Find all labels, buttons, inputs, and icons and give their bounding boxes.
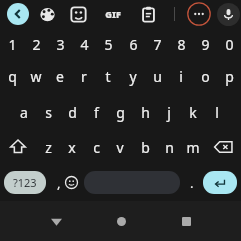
staticText: k [189, 103, 197, 122]
button[interactable]: 2 [24, 30, 48, 58]
button[interactable]: g [108, 98, 132, 126]
staticText: 6 [129, 35, 138, 54]
staticText: b [141, 138, 150, 157]
staticText: m [186, 138, 200, 157]
button[interactable]: 7 [145, 30, 169, 58]
button[interactable]: b [133, 133, 157, 161]
staticText: w [30, 67, 42, 86]
staticText: GIF [105, 8, 121, 20]
button[interactable]: t [96, 62, 120, 90]
button[interactable]: 8 [169, 30, 193, 58]
button[interactable]: x [60, 133, 84, 161]
button[interactable]: ?123 [4, 171, 46, 194]
button[interactable]: v [108, 133, 132, 161]
staticText: 4 [80, 35, 89, 54]
button[interactable]: Backspace [209, 133, 237, 161]
staticText: z [45, 138, 52, 157]
button[interactable]: z [36, 133, 60, 161]
staticText: 9 [201, 35, 210, 54]
staticText: 7 [153, 35, 162, 54]
staticText: t [105, 67, 111, 86]
button[interactable]: . [182, 171, 202, 194]
staticText: x [68, 138, 76, 157]
button[interactable]: More options [187, 2, 211, 26]
staticText: e [56, 67, 64, 86]
staticText: p [225, 67, 234, 86]
button[interactable]: 0 [217, 30, 241, 58]
staticText: q [8, 67, 17, 86]
staticText: 5 [104, 35, 113, 54]
button[interactable]: , [48, 171, 70, 194]
staticText: r [81, 67, 87, 86]
button[interactable]: GIF [103, 4, 123, 24]
button[interactable]: Stickers [70, 6, 87, 23]
button[interactable]: Back [48, 213, 64, 229]
staticText: ?123 [13, 175, 37, 190]
button[interactable]: y [121, 62, 145, 90]
staticText: g [116, 103, 125, 122]
button[interactable]: q [0, 62, 24, 90]
staticText: c [93, 138, 100, 157]
button[interactable]: a [12, 98, 36, 126]
staticText: d [68, 103, 77, 122]
staticText: . [190, 174, 194, 192]
button[interactable]: 5 [96, 30, 120, 58]
button[interactable]: 1 [0, 30, 24, 58]
staticText: 1 [8, 35, 17, 54]
button[interactable]: r [72, 62, 96, 90]
staticText: u [153, 67, 162, 86]
button[interactable]: 6 [121, 30, 145, 58]
button[interactable]: Back [7, 3, 29, 25]
staticText: o [201, 67, 210, 86]
staticText: i [179, 67, 183, 86]
staticText: 3 [56, 35, 65, 54]
button[interactable]: Home [113, 213, 129, 229]
button[interactable]: 9 [193, 30, 217, 58]
staticText: , [57, 174, 61, 192]
button[interactable]: Shift [4, 133, 32, 161]
button[interactable]: o [193, 62, 217, 90]
button[interactable]: c [84, 133, 108, 161]
button[interactable]: Clipboard [140, 6, 157, 23]
staticText: h [141, 103, 150, 122]
button[interactable]: e [48, 62, 72, 90]
button[interactable]: w [24, 62, 48, 90]
button[interactable]: s [36, 98, 60, 126]
button[interactable]: k [181, 98, 205, 126]
button[interactable]: d [60, 98, 84, 126]
button[interactable]: f [84, 98, 108, 126]
button[interactable]: n [157, 133, 181, 161]
staticText: s [45, 103, 52, 122]
staticText: 2 [32, 35, 41, 54]
button[interactable]: Space [84, 171, 180, 194]
staticText: 8 [177, 35, 186, 54]
button[interactable]: p [217, 62, 241, 90]
staticText: n [165, 138, 174, 157]
button[interactable]: l [205, 98, 229, 126]
button[interactable]: u [145, 62, 169, 90]
button[interactable]: Enter [203, 171, 237, 194]
button[interactable]: m [181, 133, 205, 161]
button[interactable]: Recents [178, 213, 194, 229]
button[interactable]: Themes [39, 6, 56, 23]
staticText: y [129, 67, 137, 86]
staticText: a [20, 103, 28, 122]
button[interactable]: 4 [72, 30, 96, 58]
button[interactable]: 3 [48, 30, 72, 58]
staticText: j [167, 103, 171, 122]
staticText: 0 [225, 35, 234, 54]
button[interactable]: j [157, 98, 181, 126]
button[interactable]: Emoji [60, 171, 82, 194]
button[interactable]: i [169, 62, 193, 90]
button[interactable]: Voice input [217, 3, 240, 26]
staticText: v [116, 138, 124, 157]
staticText: l [215, 103, 219, 122]
staticText: f [94, 103, 99, 122]
button[interactable]: h [133, 98, 157, 126]
